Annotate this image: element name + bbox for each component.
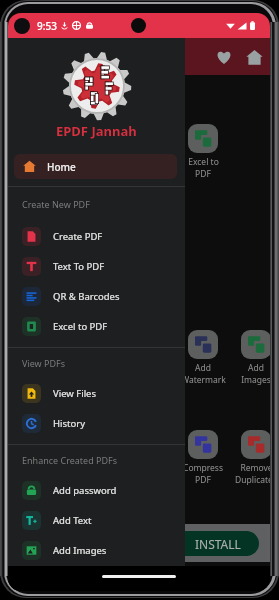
button[interactable]: Remove [230, 430, 270, 486]
staticText: QR & Barcodes [53, 290, 120, 303]
button[interactable]: Home [239, 42, 269, 72]
button[interactable]: Add [230, 330, 270, 386]
staticText: Watermark [181, 374, 226, 386]
button[interactable]: Add Images [8, 535, 185, 565]
staticText: History [53, 417, 85, 430]
staticText: View PDFs [22, 357, 66, 369]
staticText: Add Images [53, 544, 107, 557]
staticText: Excel to [188, 156, 219, 168]
button[interactable]: History [8, 408, 185, 438]
staticText: Add [195, 362, 211, 374]
staticText: Remove [240, 462, 270, 474]
staticText: Home [47, 160, 76, 174]
staticText: Create PDF [53, 230, 103, 243]
staticText: Add [248, 362, 264, 374]
button[interactable]: Excel to [177, 124, 229, 180]
button[interactable]: Add [177, 330, 229, 386]
staticText: Images [241, 374, 270, 386]
staticText: PDF [195, 474, 211, 486]
button[interactable]: Add password [8, 475, 185, 505]
staticText: Add password [53, 484, 117, 497]
staticText: Enhance Created PDFs [22, 454, 118, 466]
button[interactable]: Home [14, 154, 177, 179]
staticText: Text To PDF [53, 260, 105, 273]
staticText: PDF [195, 168, 211, 180]
staticText: Excel to PDF [53, 320, 108, 333]
button[interactable]: Excel to PDF [8, 311, 185, 341]
button[interactable]: QR & Barcodes [8, 281, 185, 311]
staticText: EPDF Jannah [56, 122, 137, 140]
button[interactable]: Add Text [8, 505, 185, 535]
staticText: 9:53 [37, 19, 57, 33]
button[interactable]: Text To PDF [8, 251, 185, 281]
staticText: Compress [183, 462, 223, 474]
staticText: Create New PDF [22, 198, 90, 210]
staticText: Duplicates [235, 474, 270, 486]
button[interactable]: Compress [177, 430, 229, 486]
button[interactable]: View Files [8, 378, 185, 408]
button[interactable]: Favourites [209, 42, 239, 72]
staticText: View Files [53, 387, 96, 400]
staticText: INSTALL [195, 536, 241, 552]
staticText: Add Text [53, 514, 92, 527]
button[interactable]: Create PDF [8, 221, 185, 251]
button[interactable]: INSTALL [14, 531, 259, 556]
